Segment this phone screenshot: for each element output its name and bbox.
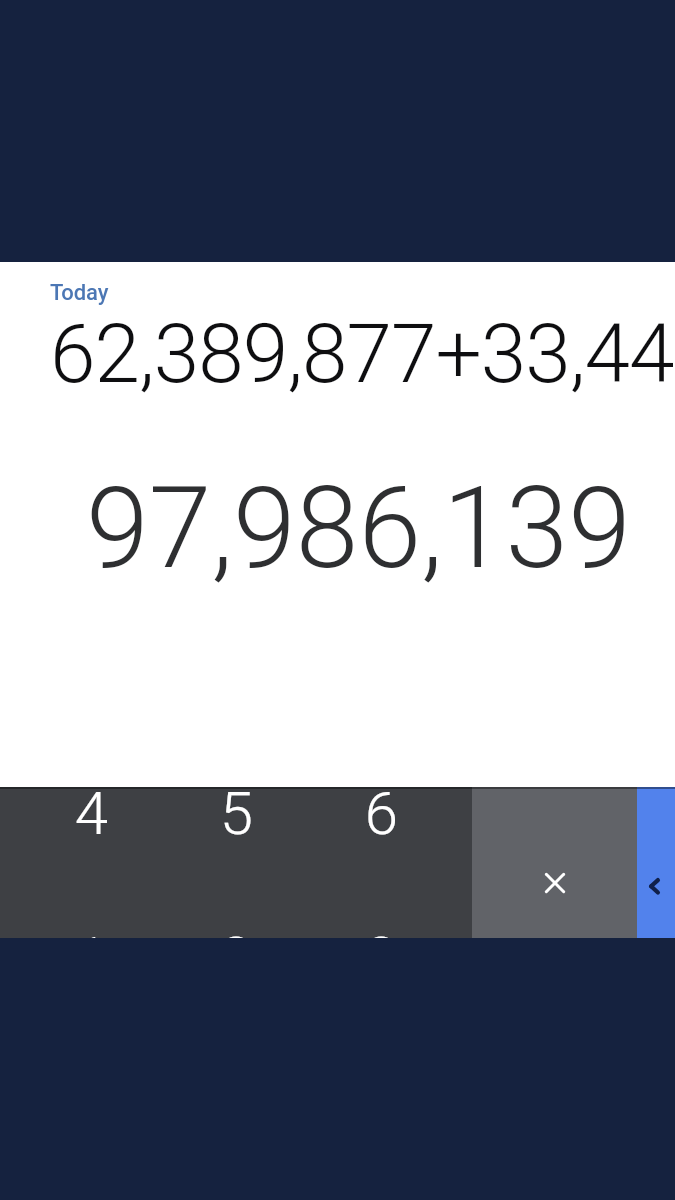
button[interactable]: 6 <box>309 787 454 938</box>
button[interactable]: 1 <box>19 932 164 938</box>
button[interactable]: 5 <box>164 787 309 938</box>
staticText: 6 <box>309 787 454 848</box>
button[interactable]: 4 <box>19 787 164 938</box>
staticText: 97,986,139 <box>86 462 631 594</box>
staticText: 3 <box>309 923 454 938</box>
button[interactable]: Multiply <box>472 787 637 938</box>
staticText: Today <box>50 280 109 306</box>
staticText: 2 <box>164 923 309 938</box>
button[interactable]: Backspace <box>637 787 675 938</box>
staticText: 5 <box>164 787 309 848</box>
button[interactable]: 3 <box>309 932 454 938</box>
staticText: 1 <box>19 923 164 938</box>
button[interactable]: 2 <box>164 932 309 938</box>
staticText: 62,389,877+33,44 <box>50 306 674 402</box>
staticText: 4 <box>19 787 164 848</box>
